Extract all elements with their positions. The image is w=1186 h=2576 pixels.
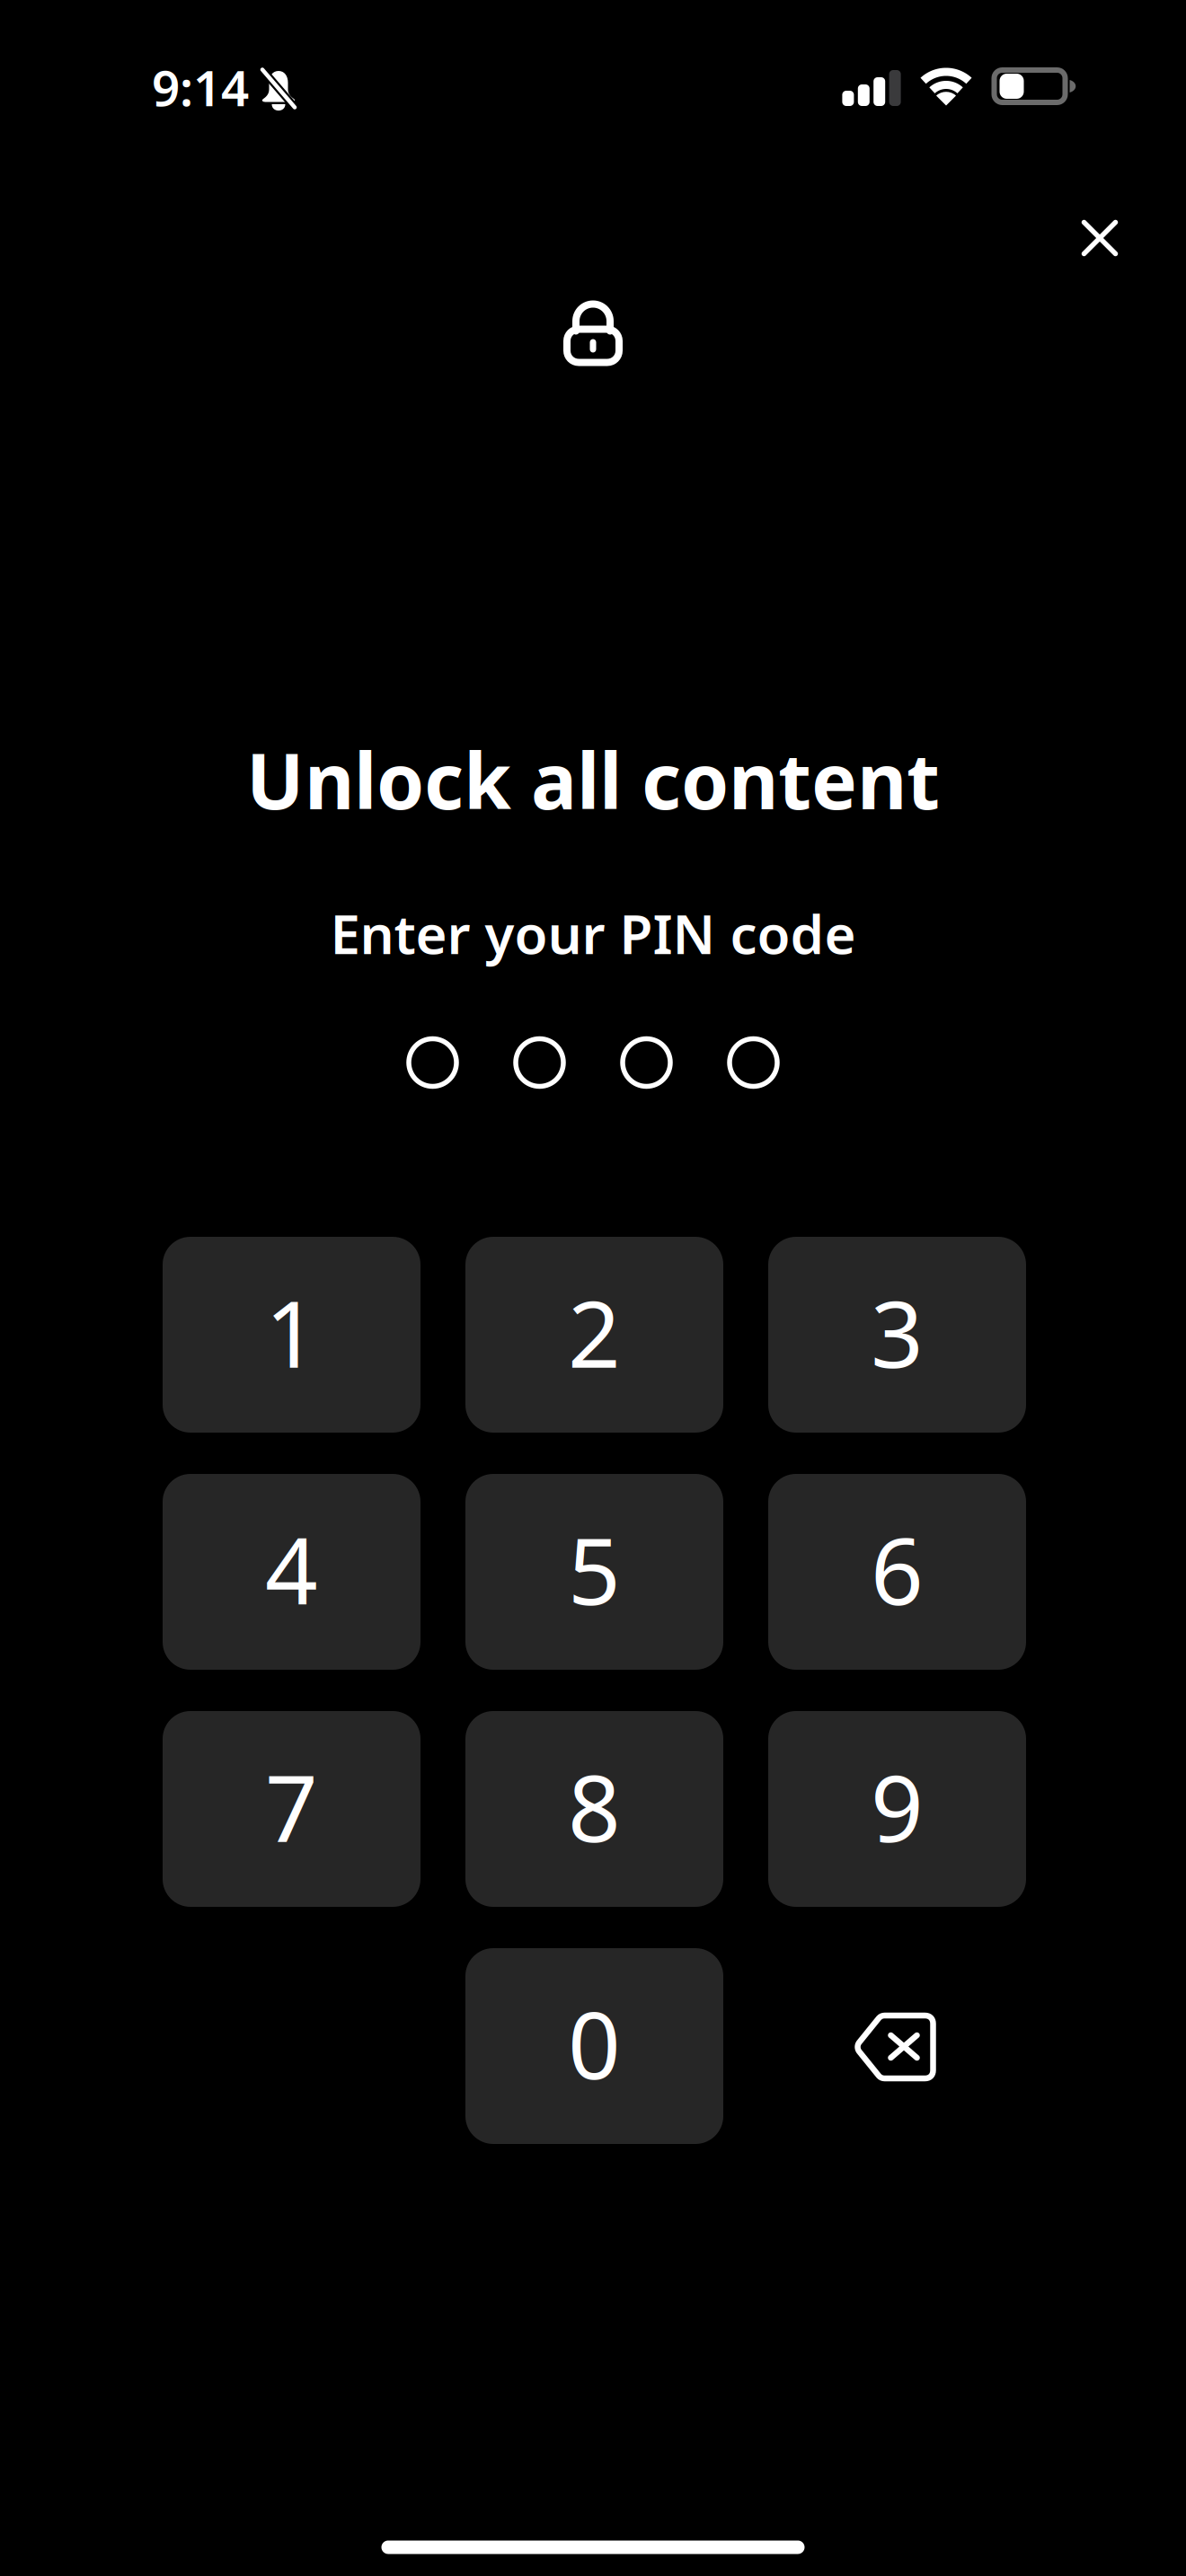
staticText: Enter your PIN code (330, 897, 856, 969)
staticText: 9:14 (152, 55, 249, 120)
button[interactable]: 4 (163, 1474, 420, 1670)
button[interactable]: Close (1063, 201, 1137, 275)
staticText: 3 (871, 1271, 924, 1393)
button[interactable]: 2 (465, 1237, 723, 1433)
button[interactable]: 1 (163, 1237, 420, 1433)
staticText: 9 (871, 1745, 924, 1867)
button[interactable]: 5 (465, 1474, 723, 1670)
staticText: 2 (568, 1271, 621, 1393)
button[interactable]: 9 (768, 1711, 1026, 1907)
button[interactable]: 0 (465, 1948, 723, 2144)
staticText: 4 (265, 1508, 318, 1630)
staticText: 5 (568, 1508, 621, 1630)
staticText: 0 (568, 1982, 621, 2105)
button[interactable]: Delete (768, 1948, 1026, 2144)
button[interactable]: 6 (768, 1474, 1026, 1670)
button[interactable]: 3 (768, 1237, 1026, 1433)
staticText: 1 (265, 1271, 318, 1393)
staticText: 6 (871, 1508, 924, 1630)
staticText: Unlock all content (246, 729, 940, 830)
staticText: 7 (265, 1745, 318, 1867)
button[interactable]: 7 (163, 1711, 420, 1907)
button[interactable]: 8 (465, 1711, 723, 1907)
staticText: 8 (568, 1745, 621, 1867)
